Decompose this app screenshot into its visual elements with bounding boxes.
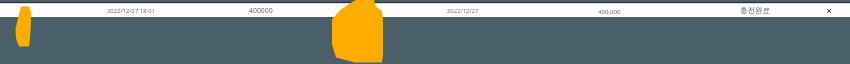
button[interactable]: Close [822, 4, 835, 17]
staticText: 충전완료 [740, 6, 770, 15]
staticText: 400,000 [598, 7, 621, 15]
staticText: 2022/12/27 18:01 [107, 7, 155, 15]
staticText: 2022/12/27 [447, 7, 479, 15]
button[interactable]: 2022/12/27 [428, 4, 498, 17]
staticText: 400000 [249, 6, 273, 15]
button[interactable]: 400,000 [579, 4, 639, 17]
button[interactable]: 2022/12/27 18:01 [86, 4, 176, 17]
button[interactable]: 400000 [231, 4, 291, 17]
button[interactable]: 충전완료 [725, 4, 785, 17]
